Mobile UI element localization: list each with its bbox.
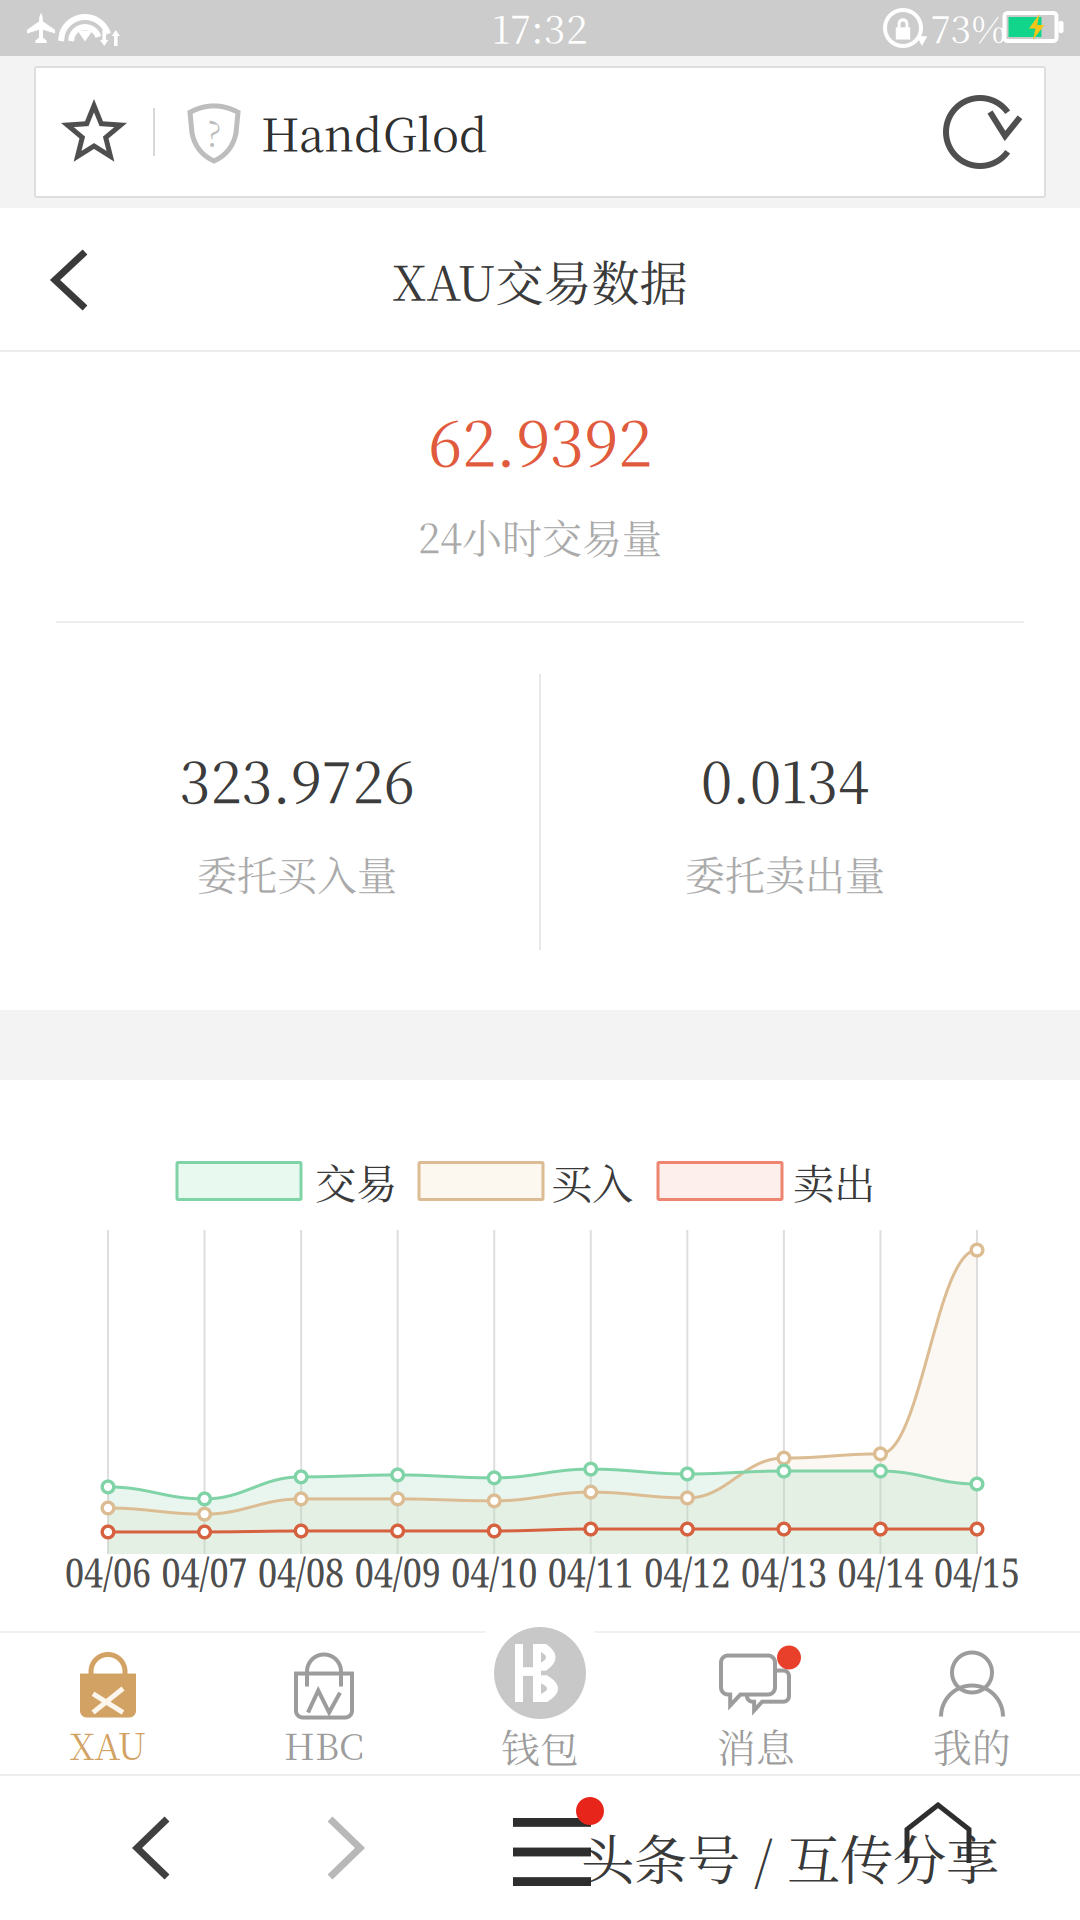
staticText: 买入	[551, 1151, 633, 1211]
staticText: 04/11	[548, 1545, 634, 1599]
staticText: 04/14	[837, 1545, 923, 1599]
staticText: 0.0134	[701, 739, 869, 819]
staticText: 04/13	[741, 1545, 827, 1599]
staticText: 62.9392	[428, 396, 652, 484]
button[interactable]: Back	[92, 1776, 212, 1920]
staticText: 323.9726	[179, 739, 414, 819]
staticText: 24小时交易量	[418, 507, 662, 565]
staticText: 04/12	[644, 1545, 730, 1599]
staticText: 04/15	[934, 1545, 1020, 1599]
staticText: 04/06	[65, 1545, 151, 1599]
staticText: 交易	[315, 1151, 397, 1211]
button[interactable]: Back	[0, 208, 125, 352]
button[interactable]: XAU	[0, 1630, 216, 1775]
button[interactable]: 消息	[648, 1630, 864, 1775]
staticText: 消息	[717, 1718, 795, 1773]
staticText: 我的	[933, 1718, 1011, 1773]
staticText: 04/08	[258, 1545, 344, 1599]
button[interactable]: Reload	[921, 67, 1045, 197]
staticText: 04/09	[355, 1545, 441, 1599]
staticText: XAU交易数据	[392, 245, 687, 314]
staticText: 04/10	[451, 1545, 537, 1599]
staticText: HandGlod	[261, 99, 488, 164]
staticText: 头条号 / 互传分享	[581, 1819, 999, 1895]
staticText: 委托卖出量	[685, 844, 885, 902]
staticText: 04/07	[162, 1545, 248, 1599]
staticText: 17:32	[492, 0, 588, 55]
staticText: 73%	[930, 0, 1005, 54]
staticText: 委托买入量	[197, 844, 397, 902]
button[interactable]: HBC	[216, 1630, 432, 1775]
button[interactable]: Forward	[285, 1776, 405, 1920]
button[interactable]: 我的	[864, 1630, 1080, 1775]
button[interactable]: Bookmark	[35, 67, 153, 197]
staticText: XAU	[69, 1719, 146, 1770]
staticText: 卖出	[793, 1151, 875, 1211]
staticText: 钱包	[501, 1718, 579, 1773]
staticText: HBC	[284, 1719, 364, 1770]
staticText: ?	[206, 107, 221, 157]
button[interactable]: 钱包	[432, 1630, 648, 1775]
